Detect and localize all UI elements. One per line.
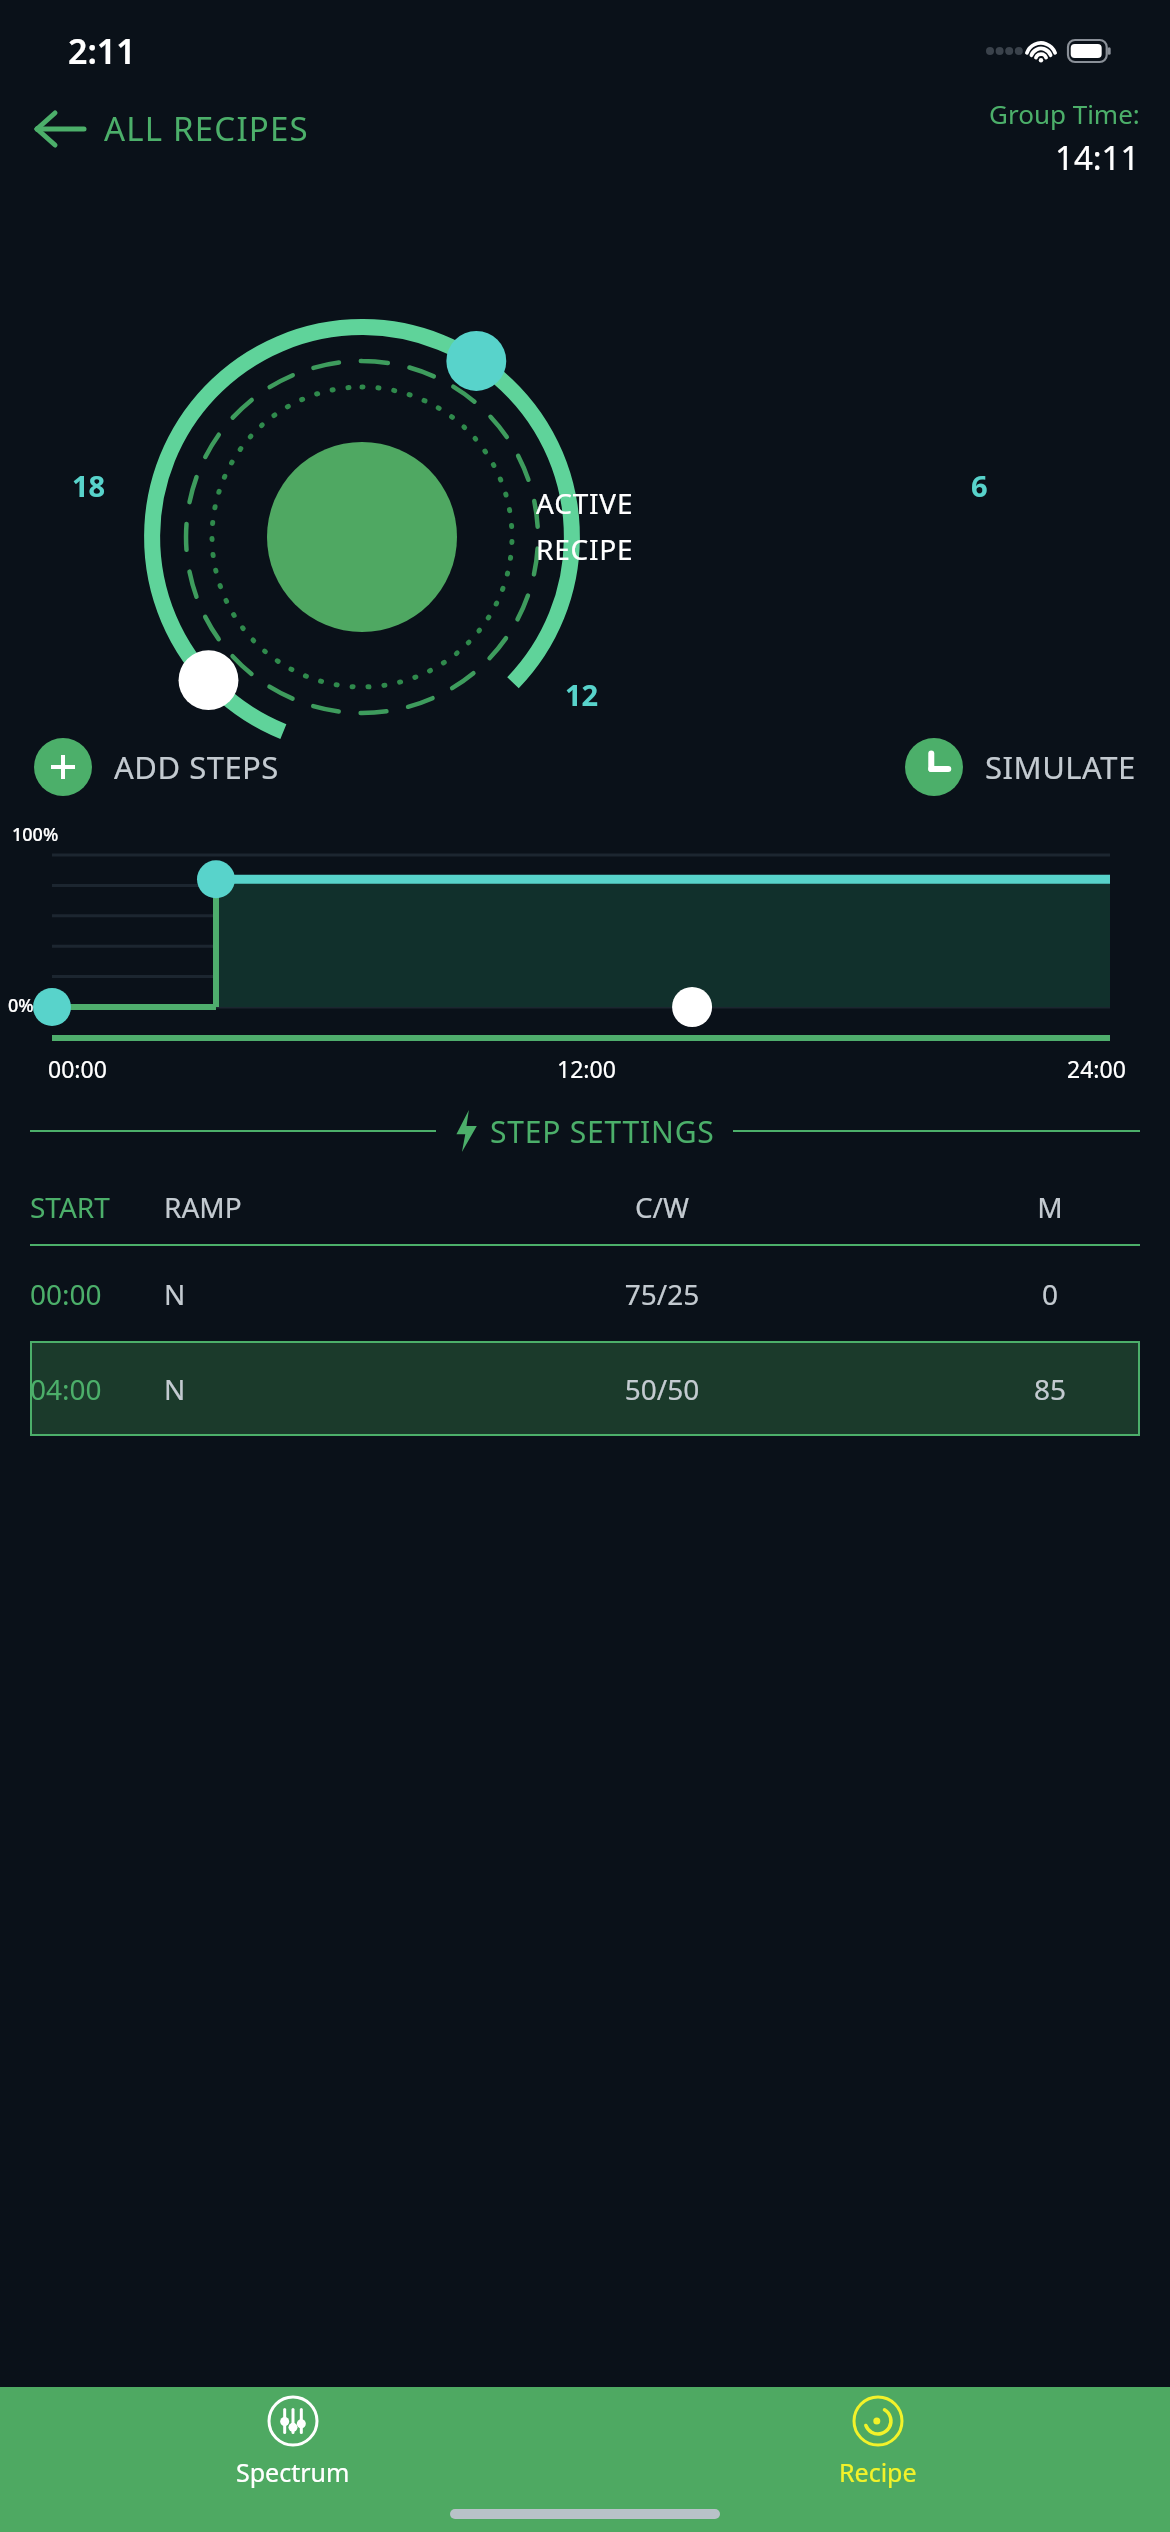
staticText: M <box>960 1188 1140 1226</box>
button[interactable]: ADD STEPS <box>30 734 283 800</box>
staticText: 18 <box>72 466 106 505</box>
staticText: 0% <box>8 993 34 1018</box>
staticText: 75/25 <box>364 1275 960 1313</box>
staticText: RAMP <box>164 1188 364 1226</box>
staticText: N <box>164 1370 364 1408</box>
staticText: SIMULATE <box>985 746 1136 788</box>
staticText: 12:00 <box>557 1053 616 1084</box>
staticText: 2:11 <box>68 28 136 74</box>
staticText: 04:00 <box>30 1370 164 1408</box>
staticText: Group Time: <box>989 96 1140 131</box>
button[interactable]: 00:00 <box>30 1246 1140 1341</box>
staticText: START <box>30 1188 164 1226</box>
staticText: 00:00 <box>30 1275 164 1313</box>
button[interactable]: SIMULATE <box>901 734 1140 800</box>
button[interactable]: Recipe <box>585 2387 1170 2496</box>
staticText: 100% <box>12 822 59 847</box>
staticText: Recipe <box>839 2455 917 2489</box>
staticText: 12 <box>565 675 599 714</box>
staticText: STEP SETTINGS <box>490 1111 715 1152</box>
staticText: ALL RECIPES <box>104 106 309 151</box>
button[interactable]: 04:00 <box>30 1341 1140 1436</box>
staticText: 6 <box>971 466 988 505</box>
staticText: Spectrum <box>236 2455 350 2489</box>
staticText: 50/50 <box>364 1370 960 1408</box>
staticText: 85 <box>960 1370 1140 1408</box>
other: Back <box>34 109 84 149</box>
staticText: 00:00 <box>48 1053 107 1084</box>
staticText: ACTIVE <box>536 484 634 522</box>
staticText: RECIPE <box>536 530 634 568</box>
staticText: 0 <box>960 1275 1140 1313</box>
button[interactable]: Spectrum <box>0 2387 585 2496</box>
staticText: 24:00 <box>1067 1053 1126 1084</box>
staticText: 14:11 <box>1055 135 1140 180</box>
button[interactable]: Back <box>30 102 313 155</box>
staticText: N <box>164 1275 364 1313</box>
staticText: C/W <box>364 1188 960 1226</box>
staticText: ADD STEPS <box>114 746 279 788</box>
